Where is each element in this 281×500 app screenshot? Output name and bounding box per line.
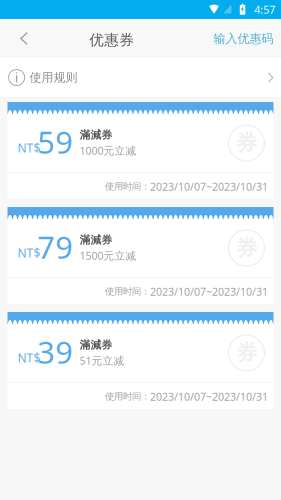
staticText: 2023/10/07~2023/10/31	[150, 389, 268, 404]
staticText: 输入优惠码	[213, 31, 273, 46]
button[interactable]: 输入优惠码	[0, 19, 281, 58]
staticText: 使用时间：	[105, 181, 150, 192]
staticText: 券	[236, 130, 257, 156]
button[interactable]: NT$	[7, 208, 273, 304]
staticText: 使用时间：	[105, 391, 150, 402]
staticText: 滿減券	[79, 338, 112, 351]
staticText: 1500元立减	[79, 248, 136, 263]
staticText: 滿減券	[79, 128, 112, 141]
staticText: 79	[37, 226, 73, 267]
staticText: NT$	[17, 140, 40, 156]
staticText: 59	[37, 121, 73, 162]
staticText: 1000元立减	[79, 143, 136, 158]
button[interactable]: NT$	[7, 313, 273, 409]
staticText: i	[15, 69, 18, 85]
button[interactable]: i	[0, 58, 281, 97]
staticText: 使用规则	[30, 70, 78, 85]
staticText: NT$	[17, 350, 40, 366]
button[interactable]: NT$	[7, 103, 273, 199]
staticText: NT$	[17, 245, 40, 261]
button[interactable]: Back	[0, 19, 46, 58]
staticText: 券	[236, 235, 257, 261]
staticText: 2023/10/07~2023/10/31	[150, 284, 268, 299]
staticText: 51元立减	[79, 353, 124, 368]
staticText: 39	[37, 331, 73, 372]
staticText: 使用时间：	[105, 286, 150, 297]
staticText: 4:57	[254, 2, 275, 17]
staticText: 优惠券	[89, 31, 134, 49]
staticText: 券	[236, 340, 257, 366]
staticText: 2023/10/07~2023/10/31	[150, 179, 268, 194]
staticText: 滿減券	[79, 233, 112, 246]
